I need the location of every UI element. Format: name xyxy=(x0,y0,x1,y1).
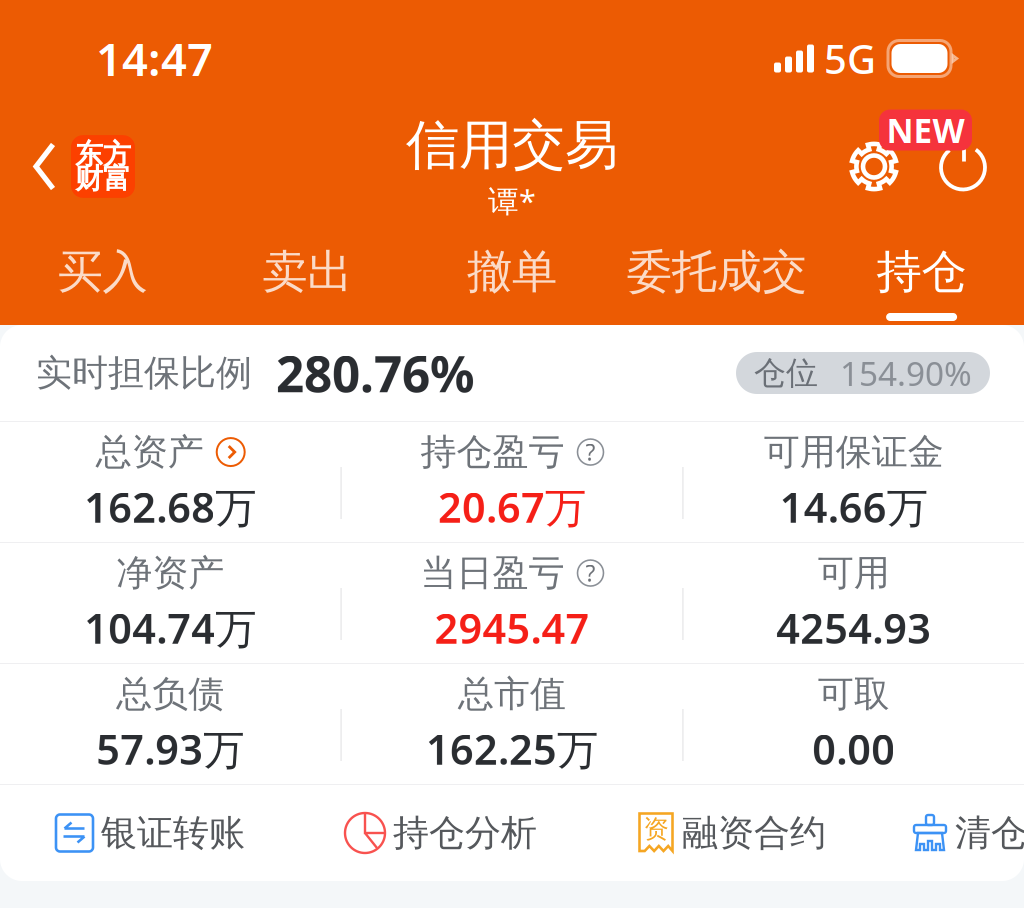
staticText: 资 xyxy=(643,813,668,844)
button[interactable]: 委托成交 xyxy=(614,230,819,325)
staticText: 买入 xyxy=(57,244,147,300)
staticText: 持仓盈亏 xyxy=(420,430,564,474)
button[interactable]: 资 xyxy=(638,811,826,855)
staticText: 2945.47 xyxy=(434,600,589,655)
staticText: 总市值 xyxy=(458,672,566,716)
staticText: 实时担保比例 xyxy=(36,351,252,395)
staticText: 银证转账 xyxy=(101,811,245,855)
staticText: 0.00 xyxy=(812,721,895,776)
staticText: 可用保证金 xyxy=(764,430,944,474)
button[interactable]: Settings xyxy=(848,140,900,192)
button[interactable]: 持仓 xyxy=(819,230,1024,325)
staticText: 撤单 xyxy=(467,244,557,300)
staticText: 可取 xyxy=(818,672,890,716)
staticText: ? xyxy=(585,437,595,467)
staticText: 委托成交 xyxy=(627,244,807,300)
staticText: 总负债 xyxy=(116,672,224,716)
staticText: 仓位 xyxy=(754,353,818,393)
staticText: 清仓 xyxy=(955,811,1024,855)
staticText: 104.74万 xyxy=(84,600,256,655)
button[interactable]: 清仓 xyxy=(913,811,1024,855)
staticText: 谭* xyxy=(488,180,536,221)
staticText: 信用交易 xyxy=(406,112,618,178)
staticText: 总资产 xyxy=(96,430,204,474)
staticText: 卖出 xyxy=(262,244,352,300)
staticText: 持仓分析 xyxy=(393,811,537,855)
staticText: 当日盈亏 xyxy=(420,551,564,595)
staticText: 162.25万 xyxy=(426,721,598,776)
button[interactable]: 买入 xyxy=(0,230,205,325)
staticText: 162.68万 xyxy=(84,479,256,534)
staticText: 东方 xyxy=(75,137,131,171)
button[interactable]: 持仓分析 xyxy=(345,811,537,855)
staticText: 280.76% xyxy=(276,340,474,406)
staticText: 5G xyxy=(824,32,876,85)
staticText: 20.67万 xyxy=(438,479,586,534)
staticText: 净资产 xyxy=(116,551,224,595)
staticText: 持仓 xyxy=(877,244,967,300)
button[interactable]: 银证转账 xyxy=(56,811,245,855)
staticText: 14.66万 xyxy=(780,479,928,534)
staticText: 4254.93 xyxy=(776,600,931,655)
staticText: 154.90% xyxy=(840,351,972,395)
staticText: NEW xyxy=(886,108,964,152)
staticText: ? xyxy=(585,558,595,588)
button[interactable]: Back xyxy=(0,129,135,204)
staticText: 融资合约 xyxy=(682,811,826,855)
button[interactable]: Refresh xyxy=(938,140,988,192)
staticText: 财富 xyxy=(75,161,131,196)
staticText: 14:47 xyxy=(96,28,213,89)
button[interactable]: 卖出 xyxy=(205,230,410,325)
staticText: 可用 xyxy=(818,551,890,595)
button[interactable]: 撤单 xyxy=(410,230,614,325)
staticText: 57.93万 xyxy=(96,721,244,776)
